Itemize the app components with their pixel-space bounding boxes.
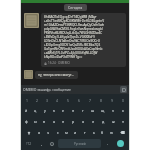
button[interactable]: ы — [31, 116, 40, 127]
staticText: Русский — [74, 142, 86, 146]
staticText: 3 — [46, 98, 48, 103]
button[interactable]: Shift — [22, 127, 35, 138]
staticText: 8hiBAOToEQgxpJDrfTiEQgWM jMAyr — [44, 15, 97, 19]
button[interactable]: е — [58, 105, 68, 116]
staticText: PRWVcvBLfBDUqLLtkQu7WLGHSfZXw4C — [44, 31, 103, 35]
button[interactable]: м — [62, 127, 71, 138]
staticText: я — [38, 130, 41, 135]
staticText: н — [72, 108, 75, 113]
staticText: щ — [101, 108, 105, 113]
button[interactable]: г — [78, 105, 88, 116]
button[interactable]: т — [80, 127, 89, 138]
button[interactable]: щ — [98, 105, 108, 116]
button[interactable]: Emoji — [46, 139, 57, 148]
staticText: э — [122, 119, 124, 124]
staticText: 1 — [26, 98, 28, 103]
button[interactable]: л — [88, 116, 98, 127]
staticText: о — [82, 119, 85, 124]
staticText: р — [72, 119, 75, 124]
staticText: +lDUpUmg0OD51wQxZ5R+fBCBbx7Q3 — [44, 43, 101, 47]
staticText: 2 — [36, 98, 38, 103]
staticText: 16:24 · OMEMO — [48, 61, 70, 65]
button[interactable]: Avatar — [24, 70, 126, 79]
button[interactable]: Avatar — [24, 13, 39, 28]
button[interactable]: 6 — [73, 95, 84, 105]
button[interactable]: з — [108, 105, 118, 116]
button[interactable]: ц — [31, 105, 40, 116]
staticText: а — [53, 119, 55, 124]
staticText: ц — [34, 108, 37, 113]
staticText: 6 — [78, 98, 80, 103]
button[interactable]: Avatar — [24, 13, 126, 67]
button[interactable]: ю — [107, 127, 116, 138]
staticText: +a5sT7wtSKQpKO0KWMfrDeHLDBLgetnV — [44, 19, 104, 23]
button[interactable]: о — [78, 116, 88, 127]
button[interactable]: Сегодня — [64, 4, 87, 11]
staticText: к — [53, 108, 55, 113]
button[interactable]: э — [118, 116, 128, 127]
staticText: 7 — [89, 98, 91, 103]
staticText: г — [82, 108, 84, 113]
staticText: 0 — [122, 98, 124, 103]
staticText: ж — [112, 119, 115, 124]
button[interactable]: ь — [89, 127, 98, 138]
button[interactable]: . — [102, 139, 112, 148]
button[interactable]: д — [98, 116, 108, 127]
button[interactable]: Enter — [117, 140, 124, 147]
button[interactable]: у — [40, 105, 49, 116]
staticText: Сегодня — [68, 5, 83, 10]
staticText: . — [107, 141, 108, 146]
button[interactable]: х — [118, 105, 128, 116]
button[interactable]: 4 — [52, 95, 62, 105]
staticText: в — [43, 119, 46, 124]
button[interactable]: Avatar — [24, 70, 33, 79]
staticText: ну, теперь они смогут... — [38, 73, 75, 77]
staticText: +zAWrEj1FLCvfPZ+4jkJUUkYqWLLDjW — [44, 51, 98, 55]
staticText: у — [44, 108, 46, 113]
button[interactable]: ф — [22, 116, 31, 127]
staticText: б — [101, 130, 104, 135]
staticText: м — [65, 130, 68, 135]
button[interactable]: н — [68, 105, 78, 116]
button[interactable]: 8 — [95, 95, 106, 105]
staticText: ?12 — [26, 142, 32, 146]
staticText: ш — [91, 108, 95, 113]
button[interactable]: 1 — [22, 95, 32, 105]
button[interactable]: ?12 — [22, 139, 36, 148]
button[interactable]: 2 — [32, 95, 42, 105]
staticText: ф — [25, 119, 28, 124]
staticText: й — [25, 108, 28, 113]
button[interactable]: р — [68, 116, 78, 127]
staticText: с — [57, 130, 59, 135]
button[interactable]: OMEMO зашифр. сообщение — [23, 87, 118, 92]
staticText: GaTgmWrCWVmkUxoNOGkAXaCopNmb — [44, 47, 103, 51]
staticText: л — [92, 119, 95, 124]
button[interactable]: а — [49, 116, 58, 127]
button[interactable]: 3 — [42, 95, 52, 105]
staticText: , — [41, 141, 42, 146]
button[interactable]: Backspace — [116, 127, 128, 138]
button[interactable]: 7 — [84, 95, 95, 105]
button[interactable]: в — [40, 116, 49, 127]
button[interactable]: с — [53, 127, 62, 138]
button[interactable]: и — [71, 127, 80, 138]
button[interactable]: 5 — [62, 95, 73, 105]
button[interactable]: 9 — [106, 95, 117, 105]
button[interactable]: я — [35, 127, 44, 138]
staticText: 4 — [56, 98, 58, 103]
button[interactable]: ч — [44, 127, 53, 138]
button[interactable]: 0 — [117, 95, 128, 105]
staticText: 8 — [100, 98, 102, 103]
staticText: д — [102, 119, 105, 124]
staticText: ь — [93, 130, 95, 135]
button[interactable]: Русский — [58, 139, 101, 148]
button[interactable]: й — [22, 105, 31, 116]
button[interactable]: к — [49, 105, 58, 116]
button[interactable]: , — [36, 139, 46, 148]
button[interactable]: Send — [120, 86, 127, 93]
button[interactable]: п — [58, 116, 68, 127]
staticText: 9 — [111, 98, 113, 103]
button[interactable]: ж — [108, 116, 118, 127]
button[interactable]: ш — [88, 105, 98, 116]
button[interactable]: б — [98, 127, 107, 138]
